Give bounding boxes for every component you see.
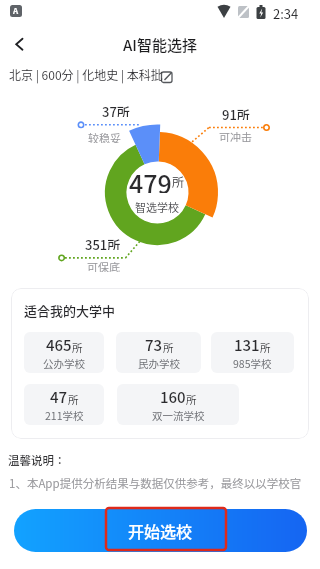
staticText: 可保底: [87, 259, 120, 272]
staticText: 公办学校: [43, 356, 85, 371]
staticText: 351所: [85, 235, 121, 250]
staticText: 211学校: [45, 408, 84, 423]
button[interactable]: 开始选校: [14, 509, 307, 552]
staticText: A: [13, 5, 19, 17]
staticText: 所: [68, 392, 79, 407]
staticText: 131: [234, 334, 260, 356]
staticText: 适合我的大学中: [24, 301, 116, 320]
staticText: 985学校: [233, 356, 272, 371]
button[interactable]: 47: [24, 384, 104, 425]
staticText: 所: [72, 340, 83, 355]
button[interactable]: 北京 | 600分 | 化地史 | 本科批: [0, 66, 320, 88]
button[interactable]: [8, 34, 30, 56]
staticText: 479: [129, 165, 172, 193]
staticText: AI智能选择: [123, 34, 197, 55]
button[interactable]: 73: [116, 332, 201, 373]
button[interactable]: 160: [117, 384, 239, 425]
staticText: 160: [160, 386, 186, 408]
staticText: 可冲击: [219, 129, 252, 142]
staticText: 开始选校: [128, 519, 193, 542]
button[interactable]: 465: [24, 332, 104, 373]
staticText: 所: [186, 392, 197, 407]
staticText: 北京 | 600分 | 化地史 | 本科批: [9, 66, 163, 83]
staticText: 465: [46, 334, 72, 356]
staticText: 较稳妥: [88, 130, 121, 143]
staticText: 1、本App提供分析结果与数据仅供参考，最终以以学校官: [9, 475, 302, 492]
staticText: 2:34: [273, 4, 299, 20]
staticText: 所: [163, 340, 174, 355]
button[interactable]: 131: [211, 332, 294, 373]
staticText: 47: [50, 386, 68, 408]
staticText: 73: [145, 334, 163, 356]
staticText: 所: [260, 340, 271, 355]
staticText: 民办学校: [138, 356, 180, 371]
staticText: 所: [172, 173, 185, 190]
staticText: 37所: [102, 102, 130, 117]
staticText: 91所: [222, 105, 250, 120]
staticText: 双一流学校: [152, 408, 205, 423]
staticText: 温馨说明：: [8, 452, 66, 469]
staticText: 智选学校: [135, 199, 179, 214]
